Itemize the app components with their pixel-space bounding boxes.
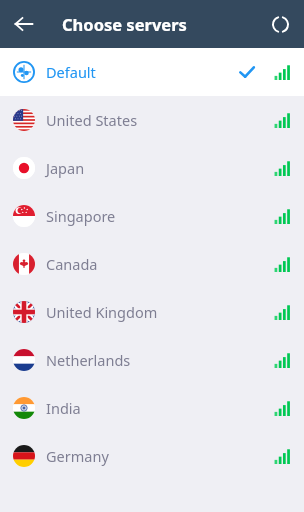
button[interactable]: Netherlands xyxy=(0,336,304,384)
staticText: India xyxy=(46,398,81,418)
button[interactable]: Japan xyxy=(0,144,304,192)
staticText: Default xyxy=(46,62,96,82)
staticText: United States xyxy=(46,110,138,130)
staticText: Germany xyxy=(46,446,109,466)
button[interactable]: Canada xyxy=(0,240,304,288)
button[interactable]: Refresh xyxy=(262,6,298,42)
button[interactable]: Default xyxy=(0,48,304,96)
button[interactable]: Back xyxy=(6,6,42,42)
staticText: Singapore xyxy=(46,206,116,226)
button[interactable]: Germany xyxy=(0,432,304,480)
staticText: United Kingdom xyxy=(46,302,158,322)
button[interactable]: India xyxy=(0,384,304,432)
staticText: Canada xyxy=(46,254,98,274)
button[interactable]: United Kingdom xyxy=(0,288,304,336)
staticText: Japan xyxy=(46,158,85,178)
staticText: Netherlands xyxy=(46,350,131,370)
button[interactable]: United States xyxy=(0,96,304,144)
button[interactable]: Singapore xyxy=(0,192,304,240)
staticText: Choose servers xyxy=(62,13,187,35)
